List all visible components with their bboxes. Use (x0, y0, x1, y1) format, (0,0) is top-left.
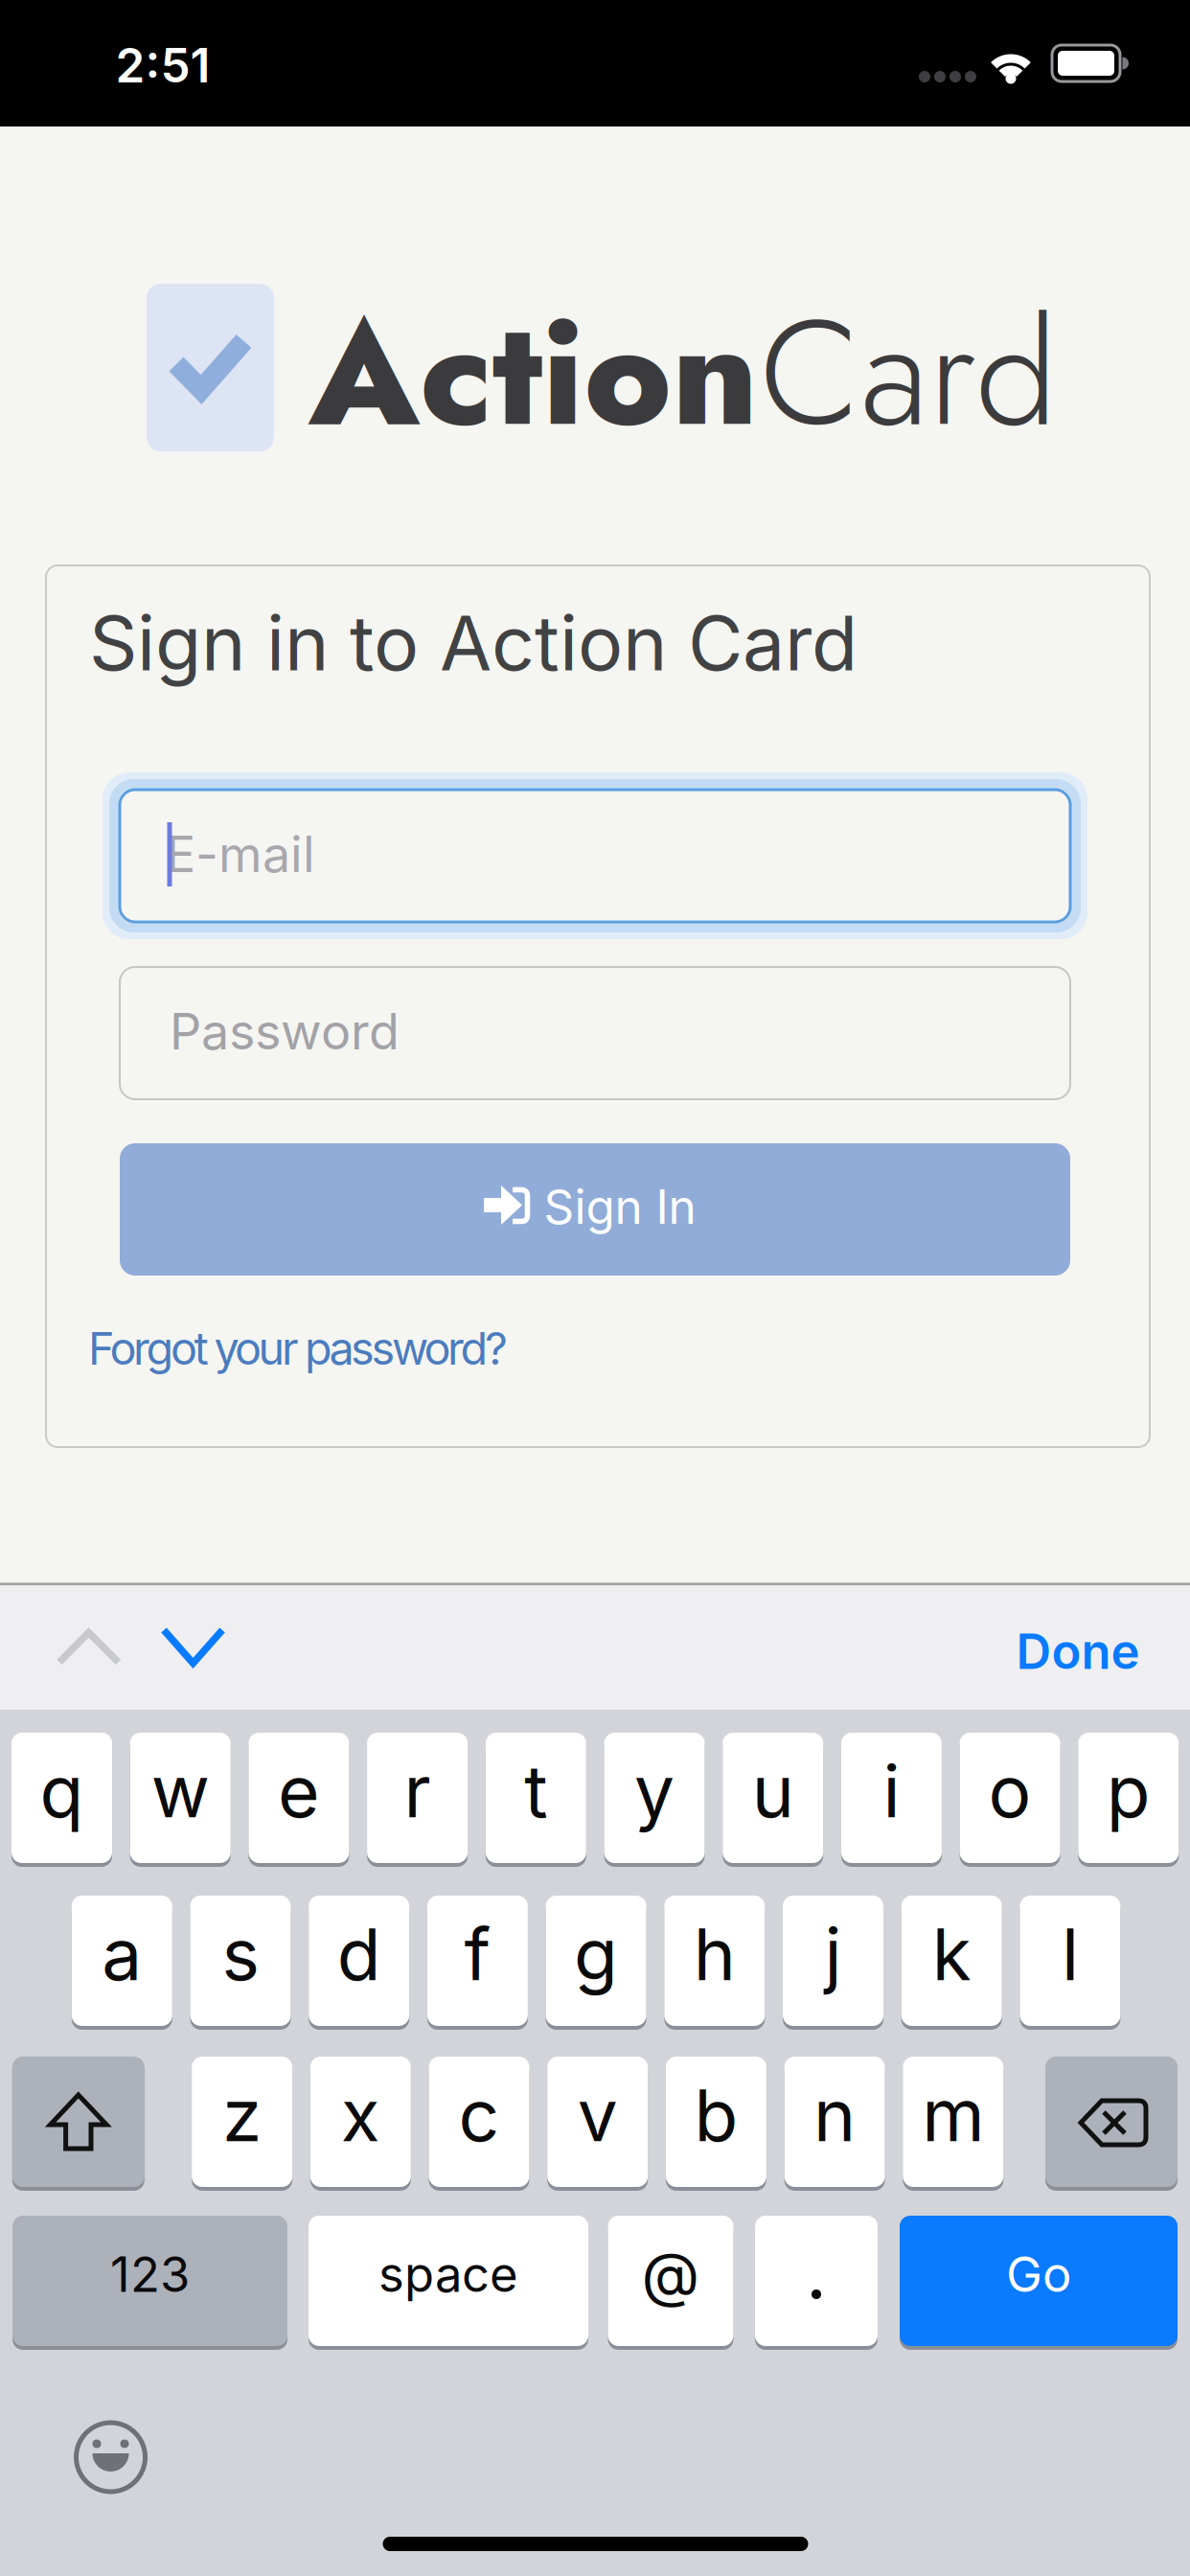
staticText: Sign in to Action Card (89, 597, 858, 689)
button[interactable]: Forgot your password? (88, 1321, 508, 1375)
staticText: s (222, 1911, 259, 1997)
staticText: space (378, 2245, 518, 2303)
button[interactable] (1045, 2057, 1178, 2187)
button[interactable]: w (130, 1733, 231, 1863)
button[interactable]: space (309, 2216, 588, 2346)
staticText: z (222, 2072, 262, 2158)
staticText: n (814, 2072, 856, 2158)
staticText: r (404, 1748, 431, 1834)
staticText: q (40, 1748, 84, 1834)
button[interactable]: Go (900, 2216, 1178, 2346)
staticText: h (693, 1911, 736, 1997)
button[interactable]: t (486, 1733, 586, 1863)
staticText: 123 (110, 2245, 190, 2303)
button[interactable]: Done (1016, 1622, 1140, 1681)
button[interactable]: o (960, 1733, 1060, 1863)
button[interactable]: m (903, 2057, 1003, 2187)
staticText: Go (1006, 2245, 1071, 2303)
button[interactable]: z (192, 2057, 292, 2187)
button[interactable]: b (666, 2057, 766, 2187)
button[interactable] (74, 2421, 147, 2494)
staticText: i (883, 1748, 900, 1834)
button[interactable] (120, 790, 1070, 922)
staticText: Forgot your password? (88, 1321, 508, 1375)
staticText: 2:51 (115, 37, 210, 94)
button[interactable] (120, 1143, 1070, 1276)
staticText: m (922, 2072, 984, 2158)
staticText: w (151, 1748, 210, 1834)
button[interactable]: q (11, 1733, 112, 1863)
button[interactable] (53, 1626, 124, 1668)
staticText: v (577, 2072, 618, 2158)
staticText: t (524, 1748, 547, 1834)
staticText: o (988, 1748, 1032, 1834)
staticText: l (1062, 1911, 1079, 1997)
staticText: y (634, 1748, 675, 1834)
button[interactable] (755, 2216, 878, 2346)
button[interactable]: h (664, 1896, 765, 2026)
staticText: @ (641, 2238, 700, 2310)
staticText: a (102, 1911, 142, 1997)
button[interactable]: y (604, 1733, 705, 1863)
button[interactable]: e (249, 1733, 349, 1863)
button[interactable]: s (190, 1896, 291, 2026)
button[interactable]: i (841, 1733, 942, 1863)
button[interactable] (120, 967, 1070, 1099)
button[interactable]: n (784, 2057, 885, 2187)
staticText: e (278, 1748, 320, 1834)
button[interactable]: x (310, 2057, 411, 2187)
button[interactable]: v (547, 2057, 648, 2187)
staticText: j (824, 1911, 842, 1997)
staticText: c (458, 2072, 500, 2158)
button[interactable]: p (1078, 1733, 1179, 1863)
button[interactable] (158, 1626, 229, 1668)
button[interactable] (12, 2057, 144, 2187)
button[interactable]: a (72, 1896, 172, 2026)
staticText: d (337, 1911, 381, 1997)
button[interactable]: u (723, 1733, 823, 1863)
button[interactable]: f (427, 1896, 528, 2026)
button[interactable]: c (429, 2057, 529, 2187)
button[interactable]: r (367, 1733, 468, 1863)
staticText: Sign In (544, 1178, 696, 1235)
button[interactable]: @ (608, 2216, 733, 2346)
staticText: Done (1016, 1622, 1140, 1681)
staticText: b (694, 2072, 738, 2158)
button[interactable]: j (783, 1896, 883, 2026)
button[interactable]: l (1020, 1896, 1120, 2026)
staticText: Card (760, 267, 1058, 479)
staticText: E-mail (166, 824, 315, 884)
staticText: f (464, 1911, 491, 1997)
button[interactable]: g (546, 1896, 646, 2026)
button[interactable]: d (309, 1896, 409, 2026)
staticText: Action (309, 267, 758, 479)
staticText: Password (170, 1001, 400, 1061)
staticText: x (341, 2072, 380, 2158)
staticText: k (932, 1911, 971, 1997)
staticText: u (752, 1748, 794, 1834)
staticText: p (1106, 1748, 1151, 1834)
button[interactable]: 123 (12, 2216, 287, 2346)
button[interactable]: k (901, 1896, 1002, 2026)
staticText: g (574, 1911, 618, 1997)
